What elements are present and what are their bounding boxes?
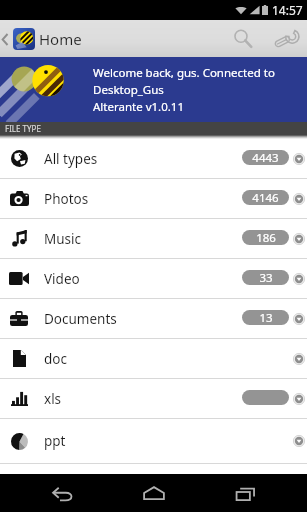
button[interactable]: Home bbox=[0, 28, 86, 50]
button[interactable]: Expand doc bbox=[293, 353, 305, 365]
button[interactable]: Expand Documents bbox=[293, 313, 305, 325]
staticText: Documents bbox=[44, 310, 117, 328]
staticText: 33 bbox=[259, 270, 273, 285]
button[interactable]: Expand ppt bbox=[293, 435, 305, 447]
staticText: Home bbox=[39, 29, 82, 49]
staticText: Video bbox=[44, 270, 80, 288]
button[interactable]: Back bbox=[32, 474, 92, 512]
button[interactable]: xls bbox=[0, 379, 307, 418]
staticText: Welcome back, gus. Connected to bbox=[93, 65, 275, 81]
button[interactable]: Photos bbox=[0, 179, 307, 218]
button[interactable]: Video bbox=[0, 259, 307, 298]
button[interactable]: Expand xls bbox=[293, 393, 305, 405]
button[interactable]: Expand Video bbox=[293, 273, 305, 285]
staticText: 4146 bbox=[252, 190, 279, 205]
button[interactable]: Home bbox=[124, 474, 184, 512]
button[interactable]: Settings bbox=[265, 20, 307, 57]
staticText: xls bbox=[44, 390, 62, 408]
button[interactable]: Documents bbox=[0, 299, 307, 338]
button[interactable]: Expand Photos bbox=[293, 193, 305, 205]
staticText: Photos bbox=[44, 190, 89, 208]
button[interactable]: doc bbox=[0, 339, 307, 378]
button[interactable]: Welcome back, gus. Connected to bbox=[0, 57, 307, 122]
button[interactable]: Expand All types bbox=[293, 153, 305, 165]
staticText: 4443 bbox=[252, 150, 279, 165]
staticText: 14:57 bbox=[272, 2, 303, 18]
button[interactable]: ppt bbox=[0, 419, 307, 463]
staticText: doc bbox=[44, 350, 67, 368]
button[interactable]: Recents bbox=[215, 474, 275, 512]
button[interactable]: Search bbox=[222, 20, 265, 57]
staticText: 13 bbox=[259, 310, 273, 325]
staticText: Music bbox=[44, 230, 82, 248]
button[interactable]: Expand Music bbox=[293, 233, 305, 245]
staticText: FILE TYPE bbox=[5, 123, 41, 134]
staticText: ppt bbox=[44, 432, 66, 450]
staticText: 186 bbox=[256, 230, 276, 245]
button[interactable]: All types bbox=[0, 139, 307, 178]
staticText: Desktop_Gus bbox=[93, 82, 164, 98]
staticText: All types bbox=[44, 150, 98, 168]
button[interactable]: Music bbox=[0, 219, 307, 258]
staticText: Alterante v1.0.11 bbox=[93, 99, 184, 115]
